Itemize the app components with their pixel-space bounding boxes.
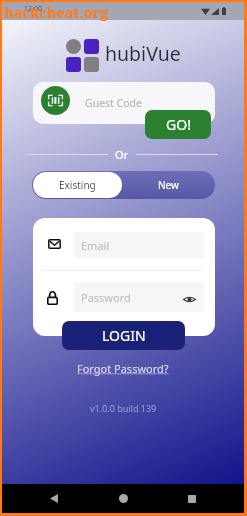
staticText: New [158,178,179,192]
button[interactable]: Back [37,484,71,513]
button[interactable]: Show password [181,291,197,307]
staticText: hackcheat.org [4,2,109,22]
button[interactable]: Scan guest code [41,86,70,115]
staticText: GO! [166,115,191,134]
button[interactable]: Forgot Password? [77,361,169,376]
button[interactable]: Recents [175,484,209,513]
staticText: Password [81,290,131,305]
staticText: Email [81,238,110,253]
staticText: hubiVue [105,40,181,67]
button[interactable]: Existing [33,172,122,198]
staticText: v1.0.0 build 139 [90,402,157,414]
button[interactable]: Home [106,484,140,513]
staticText: Guest Code [85,96,142,110]
staticText: Existing [59,178,96,192]
staticText: LOGIN [102,326,146,345]
button[interactable]: New [122,171,215,199]
button[interactable]: LOGIN [62,321,185,350]
staticText: 12:00 [24,4,42,14]
button[interactable]: GO! [145,110,211,139]
staticText: Or [115,147,129,162]
